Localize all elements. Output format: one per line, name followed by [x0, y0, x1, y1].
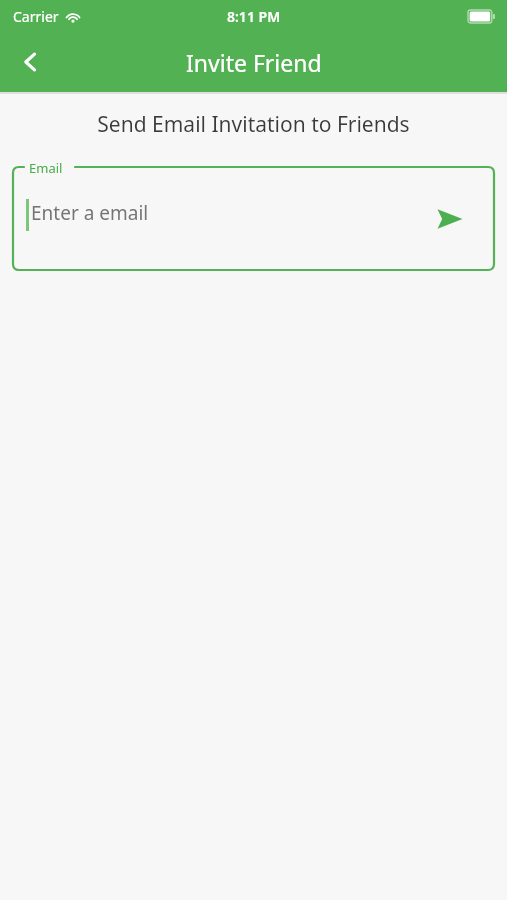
- button[interactable]: Enter a email: [13, 167, 494, 270]
- button[interactable]: Back: [8, 40, 52, 84]
- button[interactable]: Send invitation: [430, 199, 470, 239]
- staticText: Enter a email: [31, 200, 149, 226]
- staticText: 8:11 PM: [227, 7, 281, 26]
- staticText: Invite Friend: [186, 47, 322, 78]
- staticText: Send Email Invitation to Friends: [0, 110, 507, 139]
- staticText: Carrier: [13, 7, 59, 26]
- staticText: Email: [29, 159, 63, 177]
